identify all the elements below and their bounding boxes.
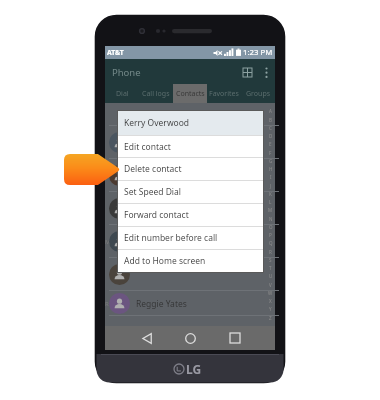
- staticText: M: [105, 238, 109, 246]
- staticText: J: [270, 183, 272, 189]
- button[interactable]: Home: [179, 326, 201, 350]
- button[interactable]: Keypad: [237, 62, 257, 82]
- staticText: Phone: [112, 66, 141, 79]
- button[interactable]: M: [105, 225, 275, 258]
- staticText: L: [105, 172, 109, 180]
- staticText: Forward contact: [124, 209, 189, 221]
- button[interactable]: R: [105, 291, 275, 316]
- staticText: T: [269, 265, 272, 271]
- button[interactable]: More options: [257, 63, 275, 81]
- staticText: C: [269, 125, 272, 131]
- staticText: B: [269, 117, 272, 123]
- button[interactable]: Dial: [105, 84, 139, 103]
- button[interactable]: Back: [136, 326, 158, 350]
- staticText: V: [269, 282, 272, 288]
- button[interactable]: Groups: [241, 84, 275, 103]
- staticText: AT&T: [107, 48, 124, 57]
- staticText: N: [269, 216, 273, 222]
- staticText: F: [269, 150, 272, 156]
- button[interactable]: Call logs: [139, 84, 173, 103]
- staticText: Y: [269, 306, 272, 312]
- staticText: Leo Anderson: [136, 170, 192, 182]
- staticText: H: [269, 166, 273, 172]
- staticText: Edit contact: [124, 141, 171, 153]
- button[interactable]: [105, 258, 275, 291]
- staticText: M: [268, 207, 273, 213]
- staticText: O: [269, 224, 273, 230]
- staticText: R: [269, 249, 272, 255]
- staticText: U: [269, 273, 273, 279]
- staticText: LG: [186, 361, 202, 377]
- button[interactable]: Edit contact: [118, 136, 263, 157]
- staticText: A: [269, 108, 272, 114]
- staticText: Delete contact: [124, 163, 182, 175]
- button[interactable]: Add to Home screen: [118, 250, 263, 272]
- staticText: R: [105, 300, 109, 308]
- staticText: Reggie Yates: [136, 298, 187, 310]
- staticText: Kerry Overwood: [124, 117, 190, 129]
- button[interactable]: Lucy Hart: [105, 192, 275, 225]
- staticText: Edit number before call: [124, 232, 218, 244]
- button[interactable]: L: [105, 159, 275, 192]
- staticText: L: [269, 199, 272, 205]
- staticText: Set Speed Dial: [124, 186, 182, 198]
- staticText: Call logs: [142, 89, 170, 99]
- staticText: 1:23 PM: [243, 47, 273, 58]
- staticText: S: [269, 257, 272, 263]
- staticText: G: [269, 158, 273, 164]
- button[interactable]: Forward contact: [118, 204, 263, 226]
- button[interactable]: Edit number before call: [118, 227, 263, 249]
- staticText: Mark Fisher: [136, 236, 183, 248]
- button[interactable]: Favorites: [207, 84, 241, 103]
- staticText: W: [268, 290, 273, 296]
- staticText: I: [270, 174, 272, 180]
- staticText: Dial: [116, 89, 129, 99]
- staticText: Add to Home screen: [124, 255, 206, 267]
- staticText: X: [269, 298, 272, 304]
- staticText: Contacts: [176, 89, 205, 99]
- staticText: Lucy Hart: [136, 203, 174, 215]
- button[interactable]: Set Speed Dial: [118, 181, 263, 203]
- staticText: Favorites: [209, 89, 239, 99]
- button[interactable]: Kim Wexler: [105, 126, 275, 159]
- staticText: Kim Wexler: [136, 137, 181, 149]
- staticText: Groups: [246, 89, 271, 99]
- staticText: E: [269, 141, 272, 147]
- button[interactable]: Recent apps: [224, 326, 246, 350]
- staticText: Q: [269, 240, 273, 246]
- staticText: K: [269, 191, 272, 197]
- button[interactable]: Delete contact: [118, 158, 263, 180]
- staticText: P: [269, 232, 272, 238]
- staticText: Z: [269, 315, 272, 321]
- button[interactable]: Contacts: [173, 84, 207, 103]
- staticText: D: [269, 133, 273, 139]
